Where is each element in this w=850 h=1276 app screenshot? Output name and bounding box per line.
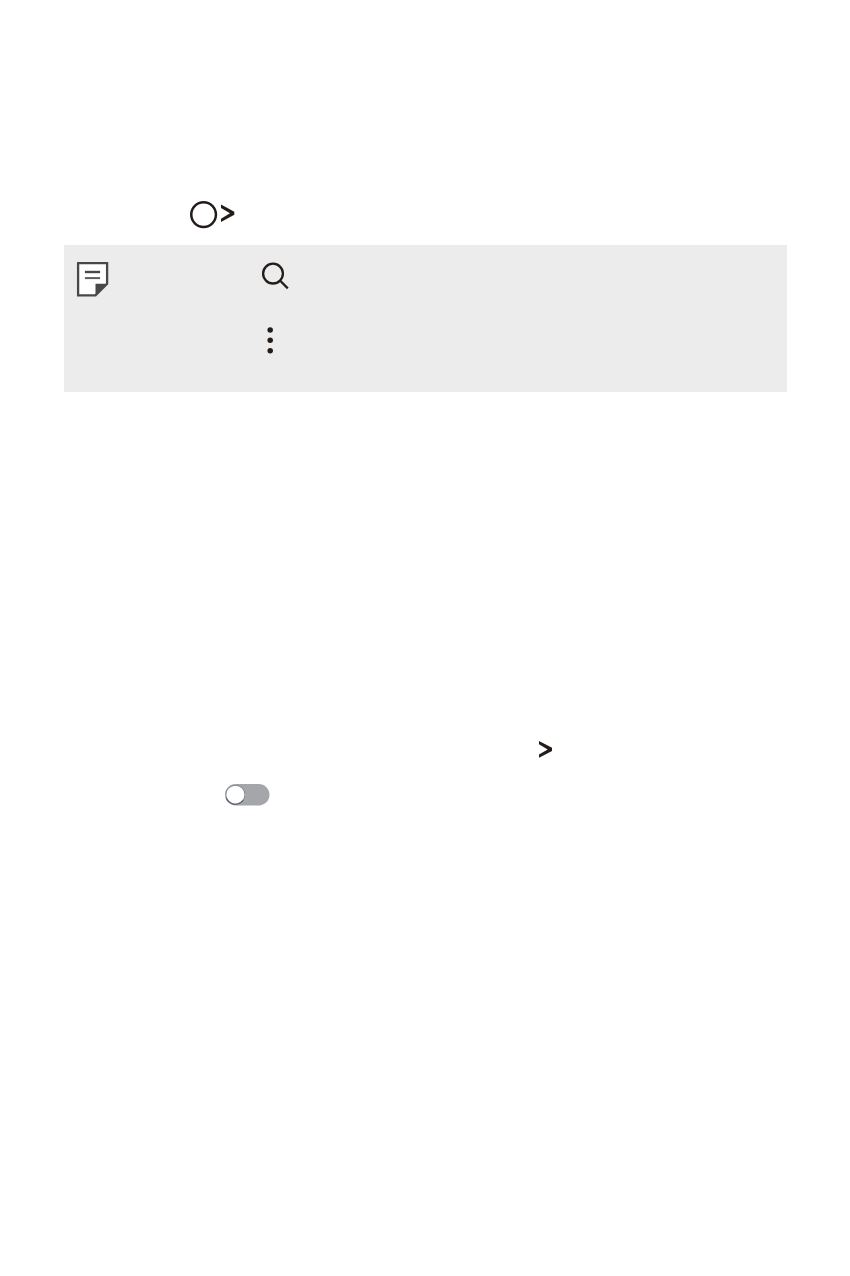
button[interactable]: Search — [257, 256, 293, 292]
other: Expand — [220, 195, 240, 233]
button[interactable]: Open — [0, 732, 850, 766]
button[interactable]: Account — [0, 195, 850, 233]
button[interactable]: Toggle setting — [0, 778, 850, 811]
other: Open — [530, 732, 562, 766]
other: Account — [188, 199, 218, 229]
button[interactable]: Notes — [72, 257, 112, 299]
button[interactable]: More options — [258, 319, 282, 359]
button[interactable]: Toggle setting — [219, 778, 275, 811]
